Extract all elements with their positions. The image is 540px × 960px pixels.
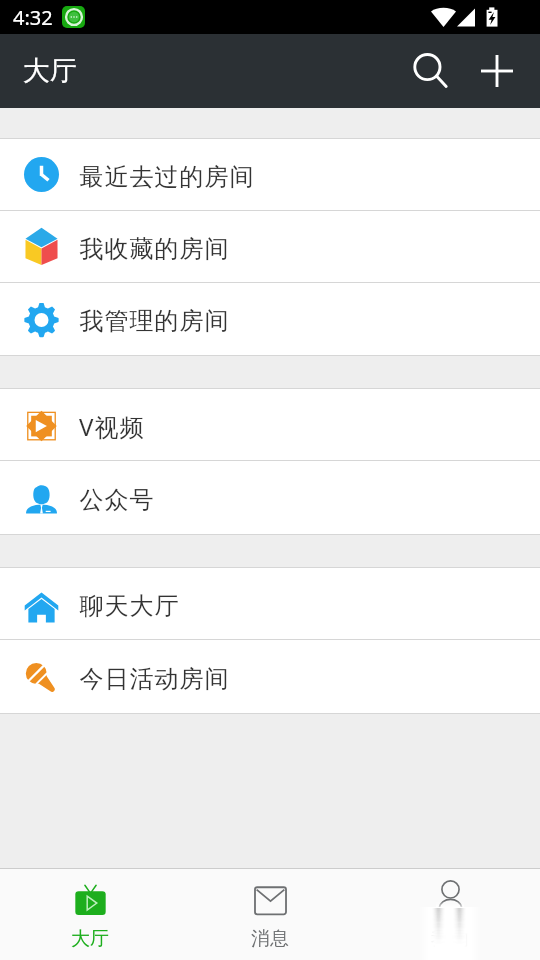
button[interactable]: 最近去过的房间 xyxy=(0,139,540,210)
button[interactable]: 我管理的房间 xyxy=(0,283,540,355)
button[interactable]: 消息 xyxy=(180,869,360,960)
staticText: 大厅 xyxy=(23,54,77,88)
staticText: 大厅 xyxy=(71,927,109,951)
staticText: 公众号 xyxy=(79,485,154,515)
staticText: 消息 xyxy=(251,927,289,951)
button[interactable]: 公众号 xyxy=(0,461,540,534)
button[interactable]: V视频 xyxy=(0,389,540,460)
button[interactable]: 我收藏的房间 xyxy=(0,211,540,282)
staticText: 4:32 xyxy=(13,4,53,31)
button[interactable]: 我的 xyxy=(360,869,540,960)
button[interactable]: 今日活动房间 xyxy=(0,640,540,713)
button[interactable]: 大厅 xyxy=(0,869,180,960)
button[interactable]: Add xyxy=(464,38,530,104)
staticText: 我管理的房间 xyxy=(79,306,229,336)
staticText: 聊天大厅 xyxy=(79,591,179,621)
staticText: 最近去过的房间 xyxy=(79,162,254,192)
staticText: 今日活动房间 xyxy=(79,664,229,694)
staticText: 我的 xyxy=(431,927,469,951)
button[interactable]: 聊天大厅 xyxy=(0,568,540,639)
staticText: V视频 xyxy=(79,410,145,443)
staticText: 我收藏的房间 xyxy=(79,234,229,264)
button[interactable]: Search xyxy=(398,38,464,104)
